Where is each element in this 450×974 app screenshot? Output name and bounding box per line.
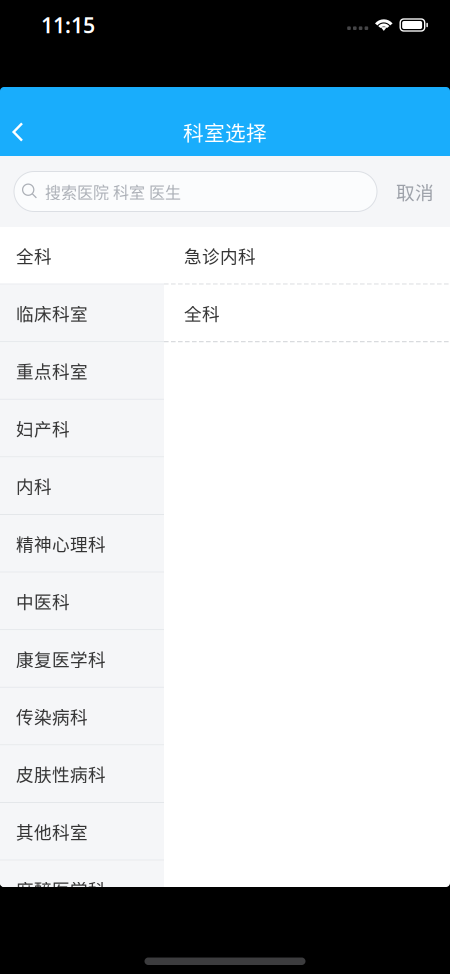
staticText: 内科 (16, 473, 52, 498)
button[interactable]: 全科 (0, 227, 164, 285)
button[interactable]: 内科 (0, 457, 164, 515)
button[interactable]: 康复医学科 (0, 630, 164, 688)
staticText: 11:15 (41, 11, 95, 39)
staticText: 精神心理科 (16, 531, 106, 556)
button[interactable]: 返回 (0, 110, 48, 154)
staticText: 麻醉医学科 (16, 876, 106, 902)
staticText: 皮肤性病科 (16, 761, 106, 786)
button[interactable]: 取消 (388, 169, 442, 213)
staticText: 传染病科 (16, 703, 88, 729)
button[interactable]: 传染病科 (0, 688, 164, 745)
button[interactable]: 其他科室 (0, 803, 164, 861)
staticText: 中医科 (16, 588, 70, 614)
button[interactable]: 全科 (164, 285, 450, 342)
staticText: 搜索医院 科室 医生 (45, 180, 181, 203)
button[interactable]: 重点科室 (0, 342, 164, 400)
button[interactable]: 麻醉医学科 (0, 861, 164, 918)
staticText: 妇产科 (16, 415, 70, 441)
staticText: 全科 (16, 243, 52, 268)
staticText: 全科 (184, 300, 220, 326)
staticText: 康复医学科 (16, 646, 106, 671)
staticText: 临床科室 (16, 300, 88, 326)
staticText: 重点科室 (16, 358, 88, 383)
staticText: 急诊内科 (184, 243, 256, 268)
staticText: 其他科室 (16, 819, 88, 844)
button[interactable]: 医技科室 (0, 918, 164, 974)
staticText: 取消 (396, 178, 434, 205)
button[interactable]: 急诊内科 (164, 227, 450, 285)
button[interactable]: 中医科 (0, 573, 164, 630)
button[interactable]: 临床科室 (0, 285, 164, 342)
staticText: 科室选择 (183, 117, 267, 147)
button[interactable]: 皮肤性病科 (0, 745, 164, 803)
button[interactable]: 精神心理科 (0, 515, 164, 573)
button[interactable]: 妇产科 (0, 400, 164, 457)
